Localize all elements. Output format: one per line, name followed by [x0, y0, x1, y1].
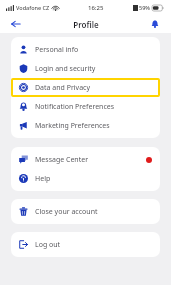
- staticText: Login and security: [35, 64, 96, 74]
- staticText: Personal info: [35, 45, 79, 55]
- staticText: Notification Preferences: [35, 102, 115, 112]
- button[interactable]: Notifications: [147, 16, 163, 32]
- staticText: Profile: [73, 19, 99, 30]
- staticText: Marketing Preferences: [35, 121, 110, 131]
- button[interactable]: Message Center: [11, 150, 160, 169]
- staticText: Log out: [35, 240, 61, 250]
- staticText: Vodafone CZ: [16, 4, 50, 11]
- button[interactable]: Login and security: [11, 59, 160, 78]
- button[interactable]: Personal info: [11, 40, 160, 59]
- staticText: Message Center: [35, 155, 89, 165]
- staticText: Data and Privacy: [35, 83, 91, 93]
- button[interactable]: Log out: [11, 235, 160, 254]
- staticText: 59%: [139, 4, 150, 11]
- button[interactable]: Notification Preferences: [11, 97, 160, 116]
- button[interactable]: Help: [11, 169, 160, 188]
- button[interactable]: Marketing Preferences: [11, 116, 160, 135]
- button[interactable]: Back: [8, 16, 24, 32]
- button[interactable]: Data and Privacy: [11, 78, 160, 97]
- staticText: 16:25: [88, 4, 104, 12]
- staticText: Close your account: [35, 207, 98, 217]
- button[interactable]: Close your account: [11, 202, 160, 221]
- staticText: Help: [35, 174, 51, 184]
